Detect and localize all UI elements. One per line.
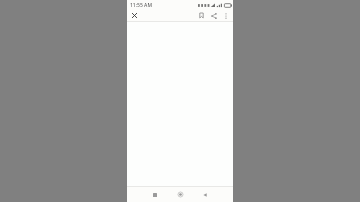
button[interactable]: More options <box>220 10 231 21</box>
button[interactable]: Recent apps <box>147 187 163 202</box>
button[interactable]: Bookmark <box>196 10 207 21</box>
button[interactable]: Home <box>172 187 188 202</box>
button[interactable]: Back <box>197 187 213 202</box>
button[interactable]: Close <box>129 10 140 21</box>
staticText: 11:55 AM <box>130 2 152 9</box>
button[interactable]: Share <box>208 10 219 21</box>
